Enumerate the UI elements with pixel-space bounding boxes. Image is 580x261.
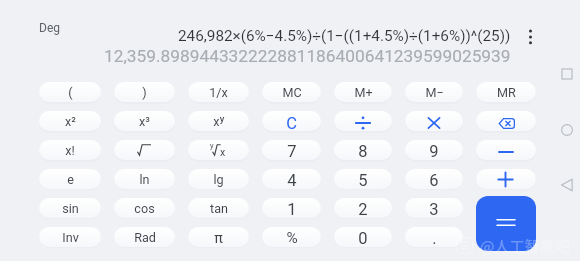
button[interactable]: Back (559, 177, 575, 193)
staticText: 5 (358, 171, 368, 189)
staticText: x! (65, 143, 75, 158)
staticText: MC (282, 85, 302, 100)
button[interactable]: Rad (114, 227, 175, 247)
button[interactable]: x² (39, 111, 101, 131)
button[interactable]: 6 (405, 169, 463, 189)
staticText: ) (142, 85, 147, 100)
button[interactable]: Deg (39, 21, 60, 35)
button[interactable]: MC (262, 82, 321, 102)
button[interactable]: Recents (559, 66, 575, 82)
staticText: ( (68, 85, 73, 100)
staticText: MR (497, 85, 516, 100)
staticText: C (286, 114, 297, 131)
button[interactable]: xʸ (188, 111, 249, 131)
staticText: 246,982×(6%−4.5%)÷(1−((1+4.5%)÷(1+6%))^(… (178, 27, 511, 45)
button[interactable]: MR (476, 82, 536, 102)
button[interactable]: ) (114, 82, 175, 102)
button[interactable]: % (262, 227, 321, 247)
button[interactable]: Equals (476, 196, 536, 251)
staticText: x³ (139, 114, 150, 129)
staticText: 12,359.898944332222881186400641239599025… (104, 46, 511, 66)
button[interactable]: tan (188, 198, 249, 218)
staticText: . (432, 229, 437, 247)
staticText: 2 (358, 200, 368, 218)
staticText: 1 (287, 200, 297, 218)
button[interactable]: ln (114, 169, 175, 189)
button[interactable]: π (188, 227, 249, 247)
button[interactable]: Divide (334, 111, 392, 131)
button[interactable]: cos (114, 198, 175, 218)
button[interactable]: 8 (334, 140, 392, 160)
button[interactable]: x³ (114, 111, 175, 131)
staticText: 4 (287, 171, 297, 189)
button[interactable]: Nth root (188, 140, 249, 160)
staticText: xʸ (213, 114, 225, 129)
staticText: tan (210, 201, 228, 216)
button[interactable]: C (262, 111, 321, 131)
button[interactable]: Multiply (405, 111, 463, 131)
button[interactable]: . (405, 227, 463, 247)
staticText: x² (65, 114, 76, 129)
staticText: Rad (134, 230, 156, 245)
staticText: x (220, 146, 226, 158)
button[interactable]: Square root (114, 140, 175, 160)
staticText: 0 (358, 229, 368, 247)
staticText: π (214, 230, 223, 247)
button[interactable]: 5 (334, 169, 392, 189)
staticText: @人工智能吧 (480, 234, 571, 256)
button[interactable]: sin (39, 198, 101, 218)
button[interactable]: lg (188, 169, 249, 189)
button[interactable]: Home (559, 122, 575, 138)
button[interactable]: M+ (334, 82, 392, 102)
staticText: 1/x (209, 85, 228, 100)
staticText: ln (139, 172, 150, 187)
staticText: cos (134, 201, 155, 216)
staticText: e (67, 172, 74, 187)
staticText: M− (425, 85, 444, 100)
staticText: % (286, 229, 298, 247)
button[interactable]: 1/x (188, 82, 249, 102)
staticText: Deg (39, 21, 60, 35)
staticText: Inv (62, 230, 79, 245)
staticText: 3 (429, 200, 439, 218)
staticText: M+ (354, 85, 373, 100)
button[interactable]: x! (39, 140, 101, 160)
button[interactable]: Minus (476, 140, 536, 160)
button[interactable]: 2 (334, 198, 392, 218)
button[interactable]: Backspace (476, 111, 536, 131)
button[interactable]: Inv (39, 227, 101, 247)
button[interactable]: 7 (262, 140, 321, 160)
staticText: lg (213, 172, 224, 187)
staticText: 9 (429, 142, 439, 160)
button[interactable]: ( (39, 82, 101, 102)
button[interactable]: 4 (262, 169, 321, 189)
button[interactable]: 0 (334, 227, 392, 247)
button[interactable]: 3 (405, 198, 463, 218)
button[interactable]: Plus (476, 169, 536, 189)
staticText: 8 (358, 142, 368, 160)
button[interactable]: 1 (262, 198, 321, 218)
staticText: y (210, 141, 214, 150)
staticText: 7 (287, 142, 297, 160)
button[interactable]: M− (405, 82, 463, 102)
staticText: 6 (429, 171, 439, 189)
staticText: sin (62, 201, 79, 216)
button[interactable]: 9 (405, 140, 463, 160)
button[interactable]: More options (522, 22, 539, 52)
button[interactable]: e (39, 169, 101, 189)
